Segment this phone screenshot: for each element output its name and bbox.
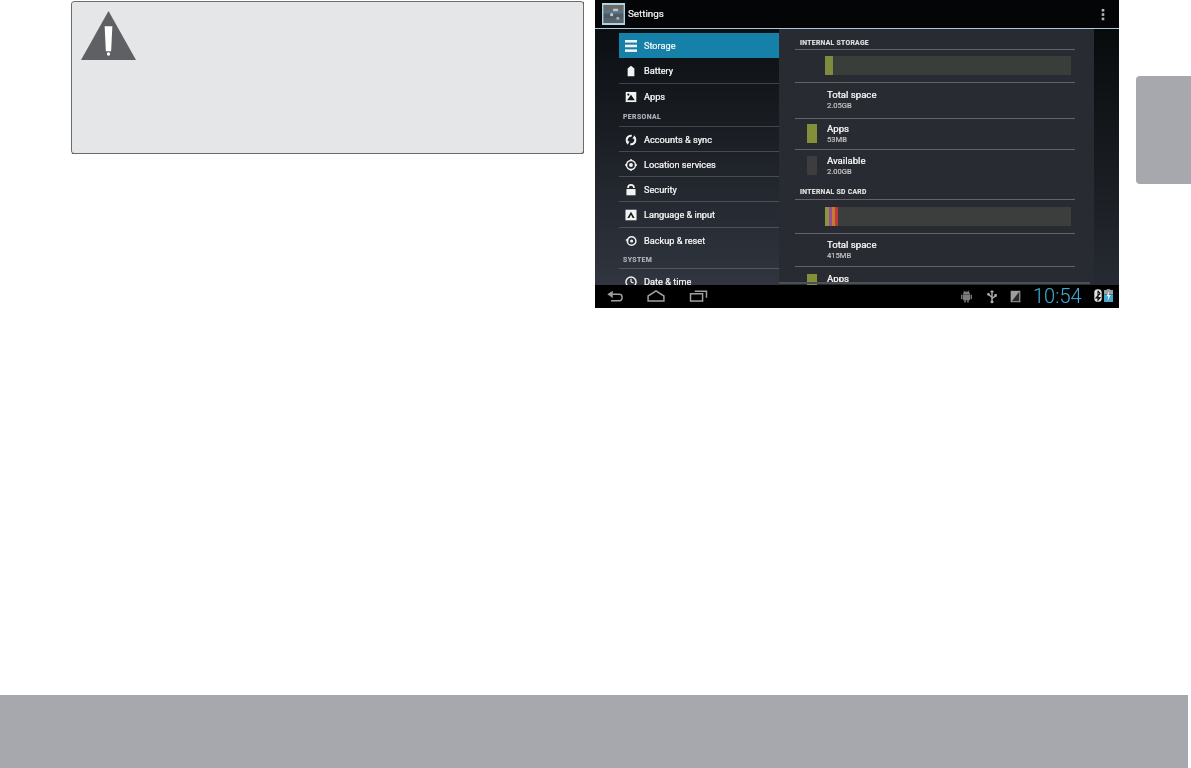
staticText: 415MB (827, 251, 852, 260)
staticText: SYSTEM (623, 256, 653, 264)
staticText: 2.00GB (827, 167, 852, 176)
staticText: Date & time (644, 276, 692, 287)
button[interactable]: Backup & reset (619, 228, 779, 253)
staticText: Total space (827, 239, 877, 250)
button[interactable]: Available (795, 153, 1075, 181)
staticText: Security (644, 184, 677, 195)
button[interactable]: Home (647, 289, 665, 303)
button[interactable]: More options (1098, 5, 1108, 23)
staticText: Storage (644, 40, 676, 51)
button[interactable]: Apps (619, 84, 779, 109)
staticText: Accounts & sync (644, 134, 712, 145)
button[interactable]: Security (619, 177, 779, 202)
button[interactable]: Language & input (619, 202, 779, 227)
staticText: Apps (827, 123, 849, 134)
staticText: Apps (827, 273, 849, 284)
staticText: 53MB (827, 135, 847, 144)
button[interactable]: Storage (619, 33, 779, 58)
staticText: 2.05GB (827, 101, 852, 110)
staticText: INTERNAL SD CARD (800, 188, 867, 196)
button[interactable]: Total space (795, 87, 1075, 115)
button[interactable]: Battery (619, 58, 779, 83)
staticText: INTERNAL STORAGE (800, 39, 869, 47)
staticText: Total space (827, 89, 877, 100)
staticText: Available (827, 155, 866, 166)
staticText: Apps (644, 91, 666, 102)
staticText: Battery (644, 65, 674, 76)
button[interactable]: Recent apps (690, 289, 707, 303)
button[interactable]: Total space (795, 237, 1075, 265)
button[interactable]: Location services (619, 152, 779, 177)
button[interactable]: Accounts & sync (619, 127, 779, 152)
staticText: Settings (628, 8, 664, 19)
other: Settings app icon (602, 3, 625, 25)
staticText: Backup & reset (644, 235, 706, 246)
staticText: Location services (644, 159, 716, 170)
staticText: Language & input (644, 209, 716, 220)
staticText: 10:54 (1033, 284, 1082, 307)
button[interactable]: Back (607, 289, 623, 303)
button[interactable]: Apps (795, 121, 1075, 149)
staticText: PERSONAL (623, 113, 662, 121)
button[interactable]: Apps (795, 271, 1075, 299)
button[interactable]: Date & time (619, 269, 779, 294)
